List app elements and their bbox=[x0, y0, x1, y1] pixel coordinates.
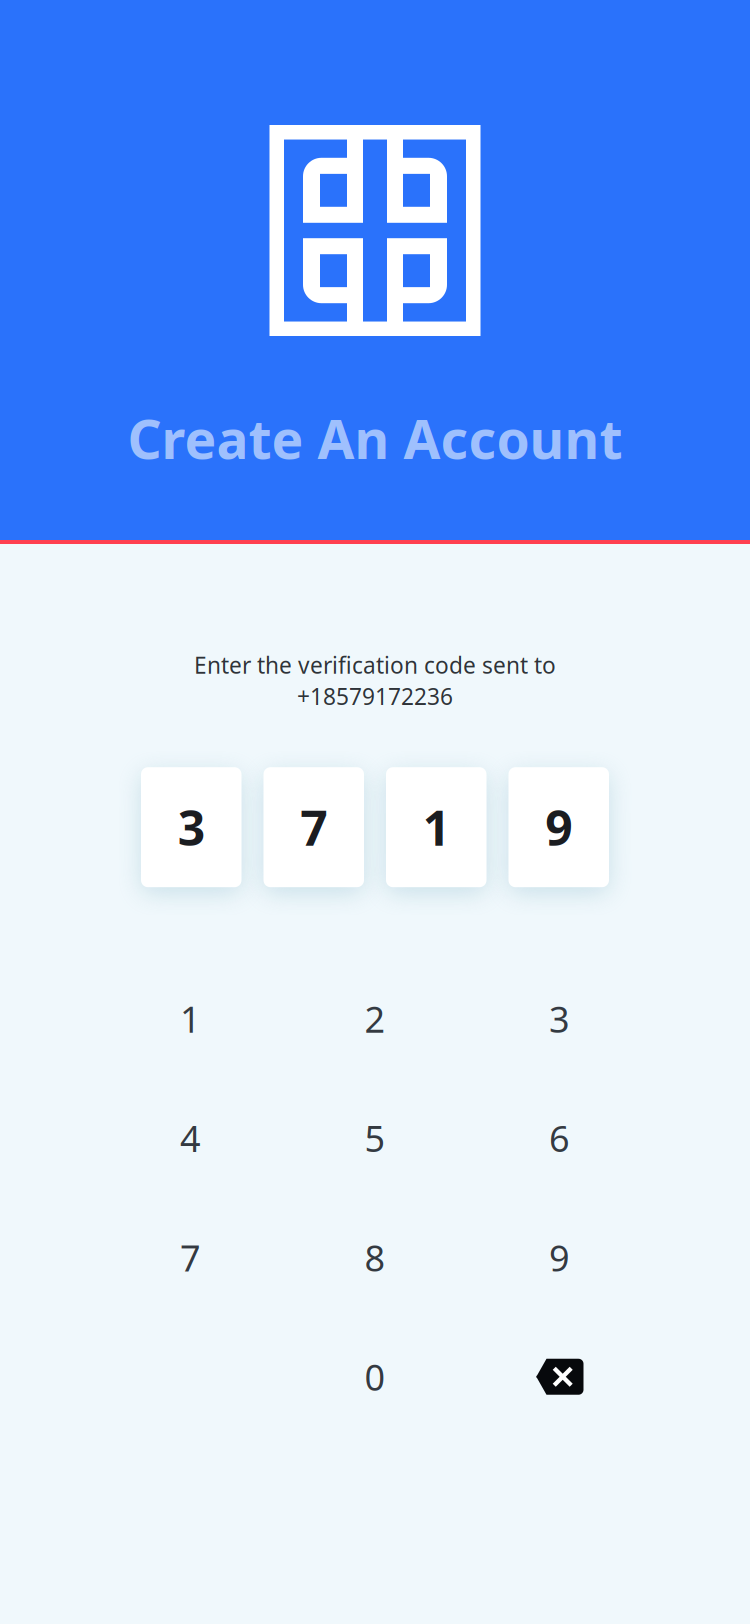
button[interactable]: 8 bbox=[283, 1198, 467, 1317]
staticText: 3 bbox=[549, 995, 570, 1043]
button[interactable]: Delete bbox=[467, 1317, 652, 1436]
button[interactable]: 9 bbox=[508, 767, 609, 887]
button[interactable]: 6 bbox=[467, 1078, 652, 1198]
button[interactable]: 4 bbox=[98, 1078, 283, 1198]
staticText: 9 bbox=[549, 1233, 570, 1281]
staticText: 0 bbox=[364, 1353, 385, 1401]
staticText: 7 bbox=[300, 795, 327, 859]
staticText: 5 bbox=[364, 1114, 385, 1162]
staticText: 3 bbox=[178, 795, 205, 859]
staticText: Enter the verification code sent to bbox=[194, 650, 556, 680]
button[interactable]: 2 bbox=[283, 959, 467, 1078]
staticText: 7 bbox=[180, 1233, 201, 1281]
button[interactable]: 7 bbox=[263, 767, 364, 887]
button[interactable]: 3 bbox=[141, 767, 241, 887]
staticText: 4 bbox=[180, 1114, 201, 1162]
button[interactable]: 0 bbox=[283, 1317, 467, 1436]
staticText: 1 bbox=[180, 995, 201, 1043]
staticText: +18579172236 bbox=[297, 681, 453, 711]
staticText: Create An Account bbox=[127, 403, 622, 474]
button[interactable]: 1 bbox=[386, 767, 486, 887]
button[interactable]: 5 bbox=[283, 1078, 467, 1198]
button[interactable]: 9 bbox=[467, 1198, 652, 1317]
button[interactable]: 7 bbox=[98, 1198, 283, 1317]
staticText: 9 bbox=[545, 795, 572, 859]
staticText: 2 bbox=[364, 995, 385, 1043]
button[interactable]: 3 bbox=[467, 959, 652, 1078]
button[interactable]: 1 bbox=[98, 959, 283, 1078]
staticText: 8 bbox=[364, 1233, 385, 1281]
staticText: 6 bbox=[549, 1114, 570, 1162]
staticText: 1 bbox=[423, 795, 450, 859]
